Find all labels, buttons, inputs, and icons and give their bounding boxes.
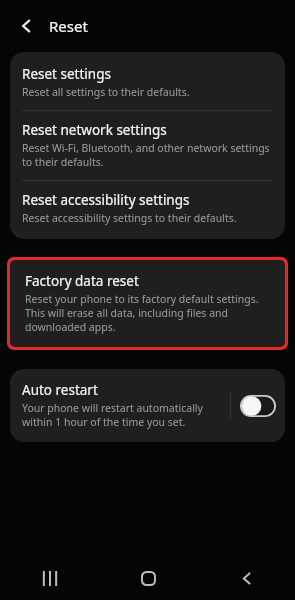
staticText: Reset bbox=[49, 16, 88, 36]
button[interactable]: Auto restart bbox=[10, 369, 285, 442]
button[interactable]: Recents bbox=[0, 556, 99, 600]
staticText: Reset network settings bbox=[22, 121, 167, 139]
button[interactable]: Reset settings bbox=[10, 55, 285, 110]
button[interactable]: Back bbox=[197, 556, 295, 600]
button[interactable]: Auto restart toggle bbox=[240, 395, 276, 417]
staticText: Factory data reset bbox=[25, 272, 139, 290]
staticText: Reset Wi-Fi, Bluetooth, and other networ… bbox=[22, 141, 273, 169]
staticText: Reset all settings to their defaults. bbox=[22, 85, 190, 99]
staticText: Reset settings bbox=[22, 65, 111, 83]
staticText: Your phone will restart automatically wi… bbox=[22, 401, 224, 429]
staticText: Auto restart bbox=[22, 381, 98, 399]
staticText: Reset accessibility settings bbox=[22, 191, 190, 209]
staticText: Reset your phone to its factory default … bbox=[25, 292, 270, 334]
button[interactable]: Home bbox=[99, 556, 197, 600]
button[interactable]: Reset accessibility settings bbox=[10, 181, 285, 236]
button[interactable]: Factory data reset bbox=[13, 262, 282, 345]
button[interactable]: Back bbox=[13, 13, 39, 39]
button[interactable]: Reset network settings bbox=[10, 111, 285, 180]
staticText: Reset accessibility settings to their de… bbox=[22, 211, 237, 225]
